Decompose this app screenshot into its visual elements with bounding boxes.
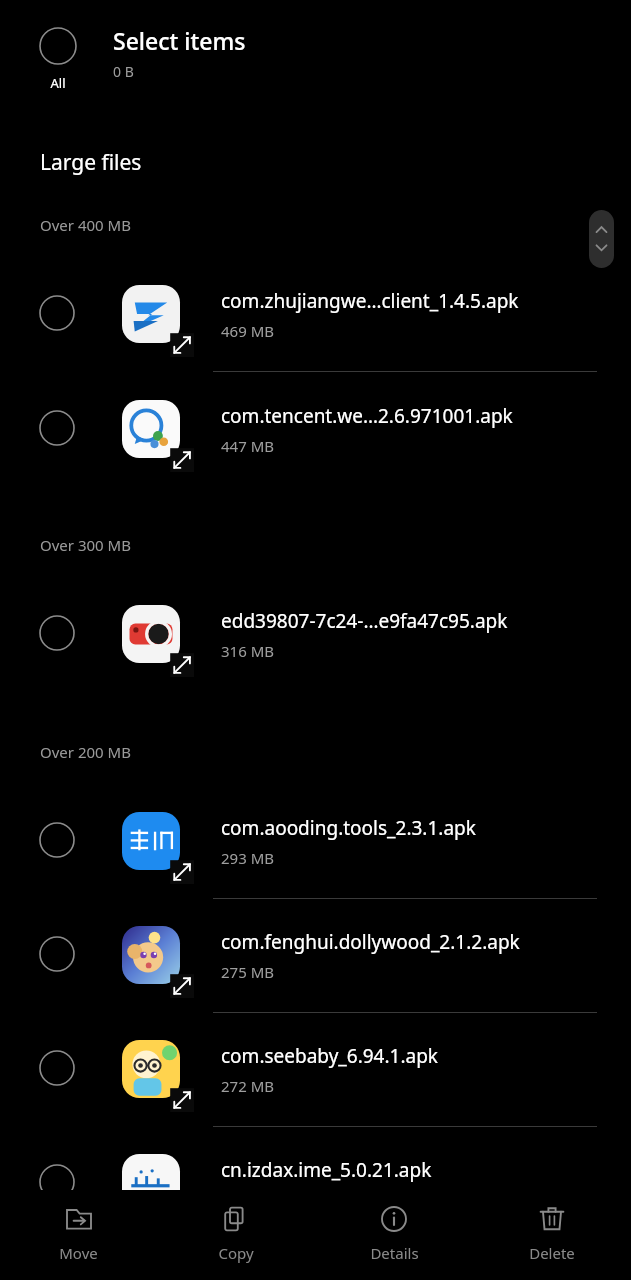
button[interactable]: Select all xyxy=(28,22,88,92)
staticText: Over 200 MB xyxy=(40,742,131,762)
staticText: cn.izdax.ime_5.0.21.apk xyxy=(221,1157,432,1183)
staticText: com.fenghui.dollywood_2.1.2.apk xyxy=(221,929,520,955)
staticText: Select items xyxy=(113,25,246,56)
button[interactable]: Copy xyxy=(157,1190,315,1280)
staticText: 469 MB xyxy=(221,321,274,341)
staticText: Details xyxy=(370,1243,419,1263)
staticText: 293 MB xyxy=(221,848,274,868)
button[interactable]: edd39807-7c24-…e9fa47c95.apk xyxy=(0,595,631,709)
staticText: Large files xyxy=(40,148,142,177)
staticText: Over 400 MB xyxy=(40,215,131,235)
button[interactable]: Delete xyxy=(473,1190,631,1280)
staticText: com.seebaby_6.94.1.apk xyxy=(221,1043,439,1069)
staticText: com.zhujiangwe…client_1.4.5.apk xyxy=(221,288,519,314)
staticText: edd39807-7c24-…e9fa47c95.apk xyxy=(221,608,508,634)
staticText: Move xyxy=(59,1243,98,1263)
button[interactable]: com.tencent.we…2.6.971001.apk xyxy=(0,390,631,504)
button[interactable]: com.fenghui.dollywood_2.1.2.apk xyxy=(0,916,631,1030)
staticText: Copy xyxy=(218,1243,254,1263)
staticText: All xyxy=(50,74,66,92)
button[interactable]: com.seebaby_6.94.1.apk xyxy=(0,1030,631,1144)
button[interactable]: Scroll xyxy=(589,210,614,268)
staticText: com.tencent.we…2.6.971001.apk xyxy=(221,403,513,429)
staticText: 447 MB xyxy=(221,436,274,456)
button[interactable]: com.zhujiangwe…client_1.4.5.apk xyxy=(0,275,631,389)
staticText: Over 300 MB xyxy=(40,535,131,555)
staticText: 0 B xyxy=(113,62,134,81)
staticText: 272 MB xyxy=(221,1076,274,1096)
staticText: com.aooding.tools_2.3.1.apk xyxy=(221,815,476,841)
button[interactable]: Details xyxy=(315,1190,473,1280)
button[interactable]: cn.izdax.ime_5.0.21.apk xyxy=(0,1144,631,1204)
button[interactable]: com.aooding.tools_2.3.1.apk xyxy=(0,802,631,916)
staticText: 316 MB xyxy=(221,641,274,661)
button[interactable]: Move xyxy=(0,1190,157,1280)
staticText: Delete xyxy=(529,1243,575,1263)
staticText: 275 MB xyxy=(221,962,274,982)
